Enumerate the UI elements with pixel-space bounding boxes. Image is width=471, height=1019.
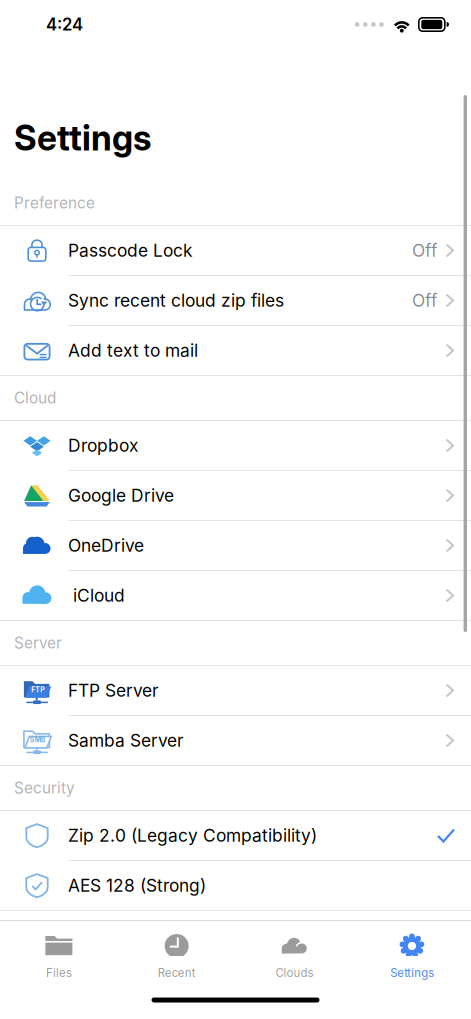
staticText: 4:24 <box>46 14 83 35</box>
staticText: SMB <box>30 735 46 744</box>
button[interactable]: SMB <box>0 716 471 766</box>
button[interactable]: Files <box>0 921 118 981</box>
staticText: Preference <box>14 194 95 212</box>
staticText: Settings <box>14 117 151 159</box>
staticText: AES 128 (Strong) <box>68 875 206 896</box>
staticText: Google Drive <box>68 485 174 506</box>
button[interactable]: Clouds <box>235 921 353 981</box>
staticText: Passcode Lock <box>68 240 193 261</box>
staticText: Sync recent cloud zip files <box>68 290 284 311</box>
staticText: OneDrive <box>68 535 144 556</box>
staticText: Cloud <box>14 389 56 407</box>
staticText: Samba Server <box>68 730 184 751</box>
staticText: Security <box>14 779 75 797</box>
button[interactable]: Zip 2.0 (Legacy Compatibility) <box>0 811 471 861</box>
button[interactable]: Passcode Lock <box>0 226 471 276</box>
staticText: Off <box>412 290 437 311</box>
staticText: Clouds <box>275 966 313 980</box>
button[interactable]: FTP <box>0 666 471 716</box>
staticText: FTP Server <box>68 680 159 701</box>
staticText: Files <box>46 966 72 980</box>
staticText: Dropbox <box>68 435 138 456</box>
button[interactable]: Dropbox <box>0 421 471 471</box>
button[interactable]: Settings <box>353 921 471 981</box>
staticText: Off <box>412 240 437 261</box>
button[interactable]: Google Drive <box>0 471 471 521</box>
button[interactable]: iCloud <box>0 571 471 621</box>
button[interactable]: AES 128 (Strong) <box>0 861 471 911</box>
staticText: Recent <box>158 966 196 980</box>
staticText: FTP <box>31 685 44 694</box>
staticText: Zip 2.0 (Legacy Compatibility) <box>68 825 317 846</box>
staticText: Add text to mail <box>68 340 198 361</box>
staticText: Server <box>14 634 62 652</box>
staticText: Settings <box>390 966 434 980</box>
button[interactable]: Recent <box>118 921 236 981</box>
button[interactable]: OneDrive <box>0 521 471 571</box>
button[interactable]: Sync recent cloud zip files <box>0 276 471 326</box>
button[interactable]: Add text to mail <box>0 326 471 376</box>
staticText: iCloud <box>68 585 125 606</box>
